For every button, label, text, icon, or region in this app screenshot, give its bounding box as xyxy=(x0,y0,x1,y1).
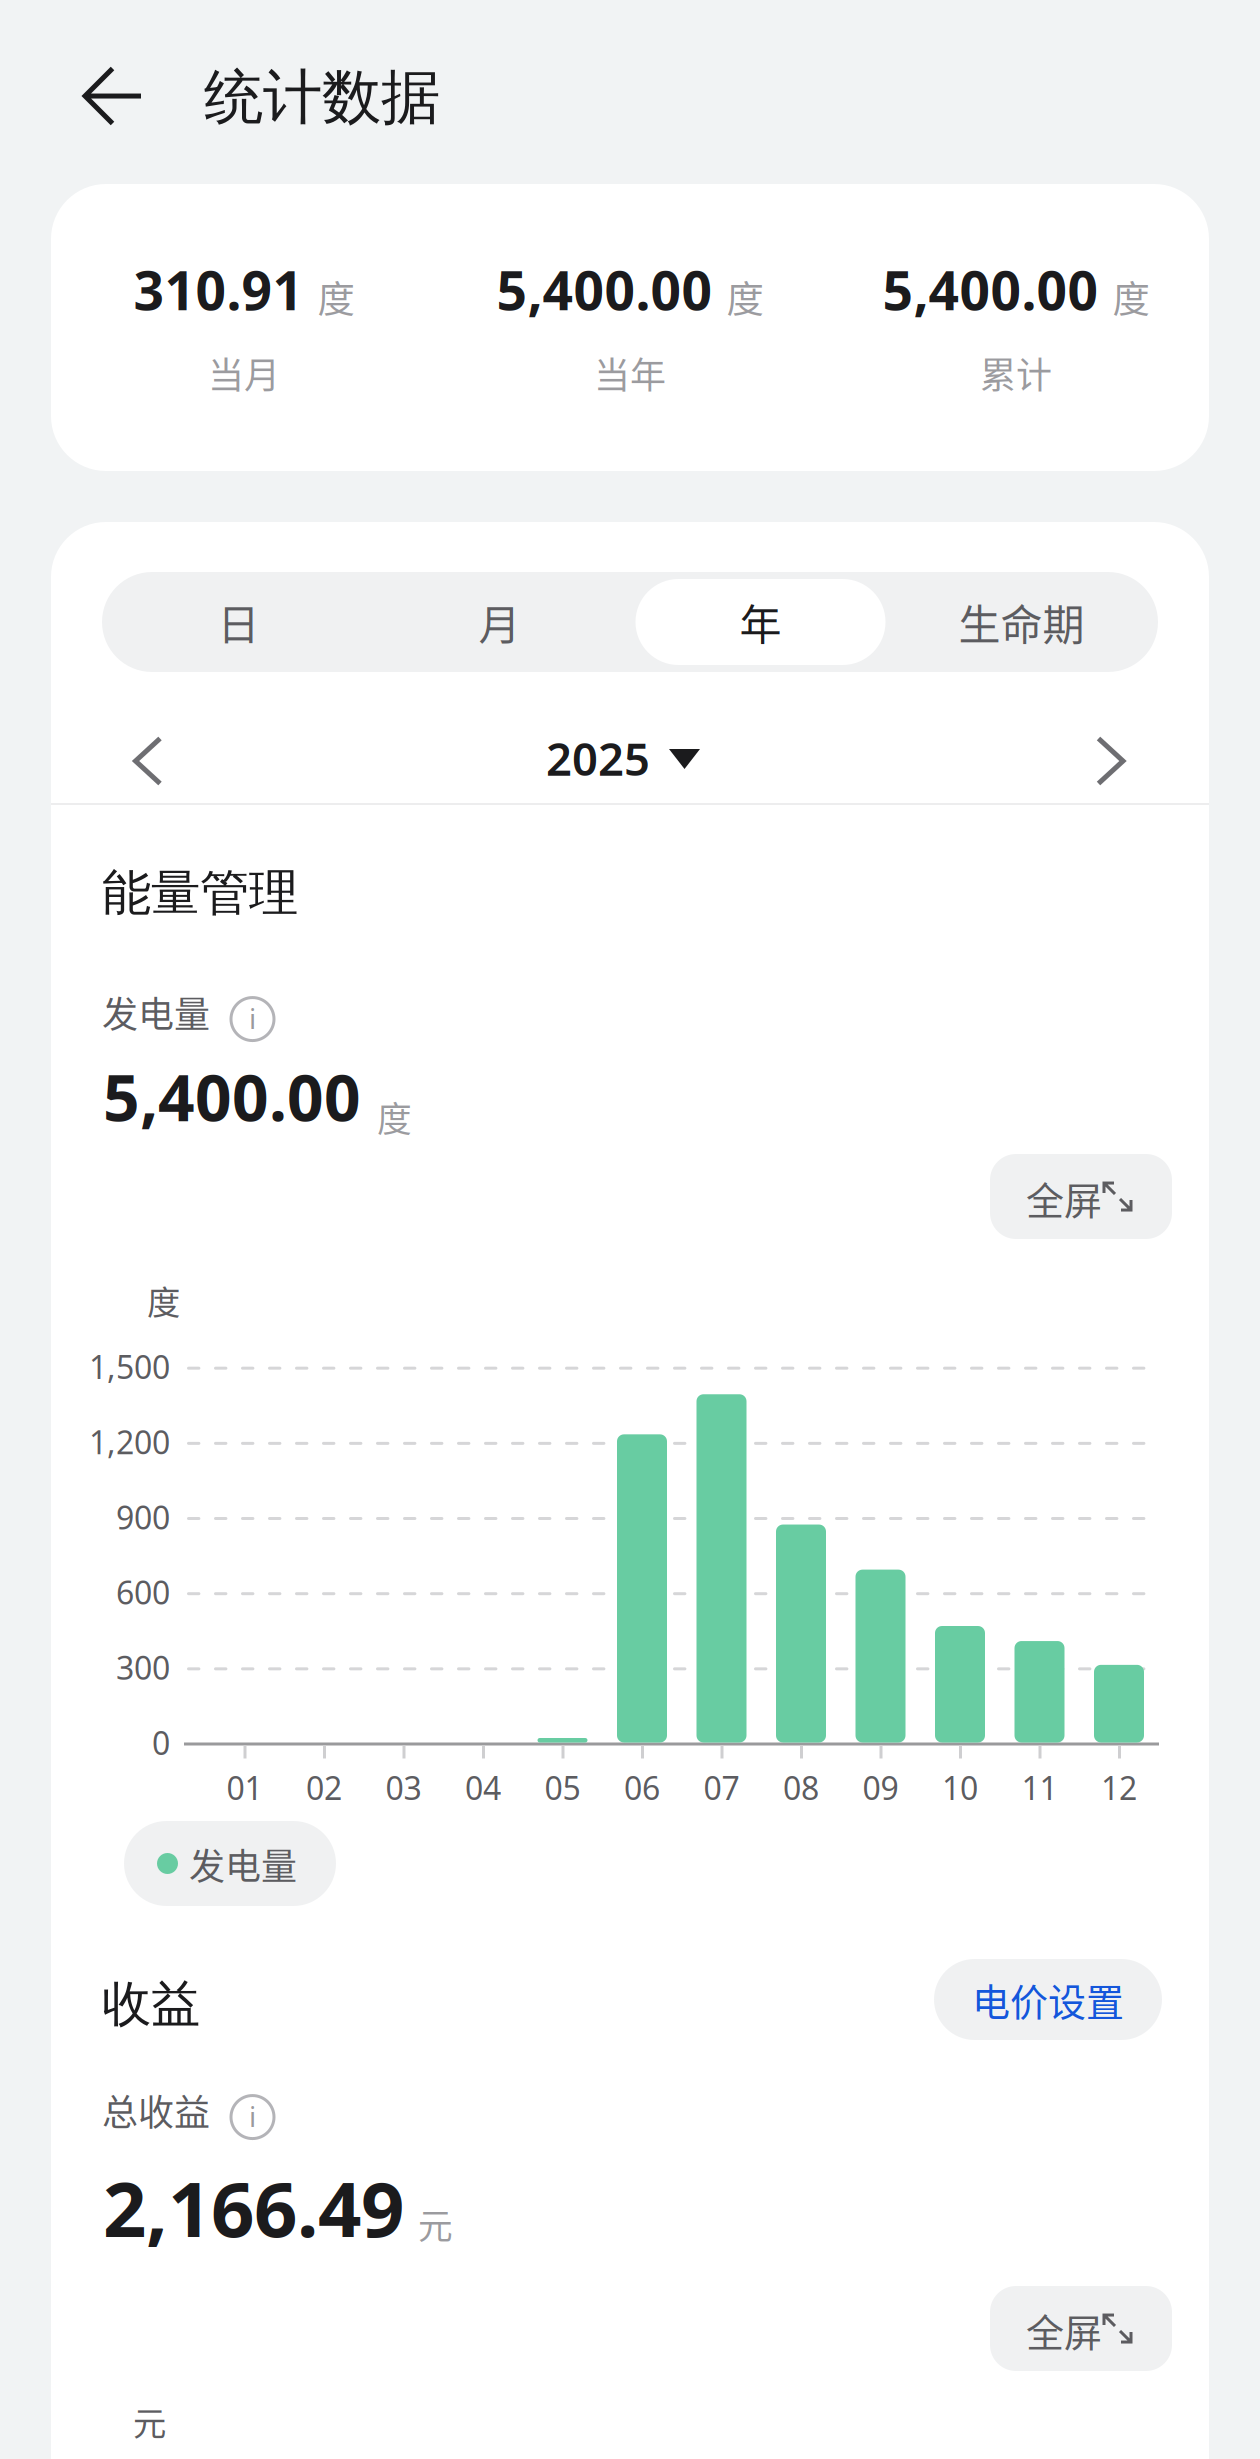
button[interactable]: 2025 xyxy=(540,732,720,792)
staticText: 度 xyxy=(317,270,354,324)
staticText: 08 xyxy=(783,1766,819,1809)
button[interactable]: Back xyxy=(57,40,169,152)
button[interactable]: 全屏 xyxy=(990,2286,1172,2371)
staticText: 600 xyxy=(116,1571,170,1613)
staticText: i xyxy=(249,999,256,1037)
staticText: 03 xyxy=(385,1766,421,1809)
button[interactable]: 电价设置 xyxy=(934,1959,1162,2040)
staticText: 900 xyxy=(116,1496,170,1538)
staticText: 2025 xyxy=(546,728,650,788)
staticText: 10 xyxy=(942,1766,978,1809)
button[interactable]: Previous year xyxy=(102,715,194,807)
staticText: 能量管理 xyxy=(102,862,298,924)
staticText: 2,166.49 xyxy=(103,2157,404,2258)
staticText: 发电量 xyxy=(189,1838,297,1890)
staticText: 310.91 xyxy=(133,254,303,325)
button[interactable]: 生命期 xyxy=(891,578,1152,666)
staticText: 统计数据 xyxy=(204,60,440,135)
staticText: 生命期 xyxy=(958,592,1084,652)
button[interactable]: 年 xyxy=(630,578,891,666)
staticText: 当年 xyxy=(594,347,666,399)
staticText: 09 xyxy=(862,1766,898,1809)
staticText: 度 xyxy=(377,1092,412,1142)
staticText: 12 xyxy=(1101,1766,1137,1809)
staticText: 月 xyxy=(478,592,520,652)
staticText: i xyxy=(249,2097,256,2135)
staticText: 06 xyxy=(624,1766,660,1809)
staticText: 01 xyxy=(226,1766,262,1809)
staticText: 发电量 xyxy=(102,986,210,1038)
staticText: 日 xyxy=(217,592,259,652)
button[interactable]: 日 xyxy=(108,578,369,666)
staticText: 04 xyxy=(465,1766,501,1809)
staticText: 度 xyxy=(1112,270,1149,324)
staticText: 度 xyxy=(726,270,763,324)
staticText: 5,400.00 xyxy=(882,254,1098,325)
staticText: 5,400.00 xyxy=(496,254,712,325)
staticText: 全屏 xyxy=(1026,2302,1102,2357)
staticText: 11 xyxy=(1021,1766,1057,1809)
staticText: 07 xyxy=(703,1766,739,1809)
staticText: 累计 xyxy=(980,347,1052,399)
staticText: 1,200 xyxy=(89,1421,170,1463)
staticText: 元 xyxy=(418,2199,453,2249)
staticText: 总收益 xyxy=(102,2084,210,2136)
staticText: 度 xyxy=(147,1276,180,1324)
staticText: 05 xyxy=(544,1766,580,1809)
staticText: 电价设置 xyxy=(972,1972,1124,2027)
staticText: 300 xyxy=(116,1646,170,1689)
button[interactable]: 月 xyxy=(369,578,630,666)
staticText: 1,500 xyxy=(89,1345,170,1388)
staticText: 当月 xyxy=(208,347,280,399)
staticText: 年 xyxy=(739,592,781,652)
staticText: 收益 xyxy=(102,1973,200,2035)
staticText: 0 xyxy=(152,1721,170,1764)
staticText: 5,400.00 xyxy=(103,1054,361,1139)
staticText: 02 xyxy=(306,1766,342,1809)
button[interactable]: Next year xyxy=(1065,715,1157,807)
staticText: 元 xyxy=(133,2397,166,2445)
staticText: 全屏 xyxy=(1026,1170,1102,1225)
button[interactable]: 全屏 xyxy=(990,1154,1172,1239)
